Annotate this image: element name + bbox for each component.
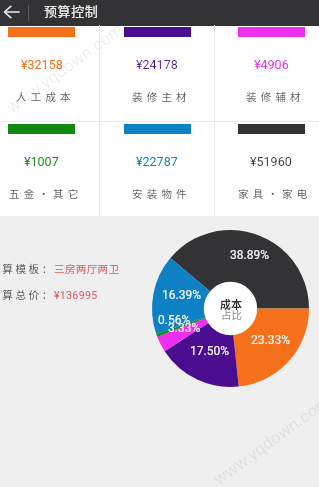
button[interactable]: Back xyxy=(0,0,28,26)
staticText: 人工成本 xyxy=(16,89,75,104)
staticText: ¥136995 xyxy=(54,289,98,301)
staticText: 16.39% xyxy=(162,288,201,302)
staticText: 23.33% xyxy=(251,333,290,347)
staticText: 0.56% xyxy=(158,313,191,327)
staticText: 3.33% xyxy=(168,321,201,335)
button[interactable]: ¥4906 xyxy=(215,25,319,121)
staticText: ¥22787 xyxy=(136,154,178,169)
button[interactable]: ¥51960 xyxy=(215,122,319,215)
staticText: 占比 xyxy=(221,307,242,322)
staticText: ¥24178 xyxy=(136,57,178,72)
staticText: ¥1007 xyxy=(24,154,59,169)
staticText: 17.50% xyxy=(190,344,229,358)
staticText: 38.89% xyxy=(230,248,269,262)
button[interactable]: ¥24178 xyxy=(100,25,214,121)
staticText: ¥32158 xyxy=(21,57,63,72)
staticText: 家具·家电 xyxy=(238,186,312,201)
staticText: 装修辅材 xyxy=(246,89,305,104)
staticText: 预算控制 xyxy=(44,1,99,20)
staticText: ¥51960 xyxy=(250,154,292,169)
button[interactable]: ¥22787 xyxy=(100,122,214,215)
staticText: 装修主材 xyxy=(132,89,191,104)
button[interactable]: ¥1007 xyxy=(0,122,99,215)
staticText: 预算总价： xyxy=(0,287,55,302)
staticText: 三房两厅两卫 xyxy=(54,261,120,276)
button[interactable]: ¥32158 xyxy=(0,25,99,121)
staticText: 预算模板： xyxy=(0,261,55,276)
staticText: 成本 xyxy=(220,296,242,312)
staticText: 安装物件 xyxy=(132,186,191,201)
staticText: 五金·其它 xyxy=(9,186,83,201)
staticText: www.yqdown.com xyxy=(2,19,127,117)
staticText: ¥4906 xyxy=(254,57,289,72)
